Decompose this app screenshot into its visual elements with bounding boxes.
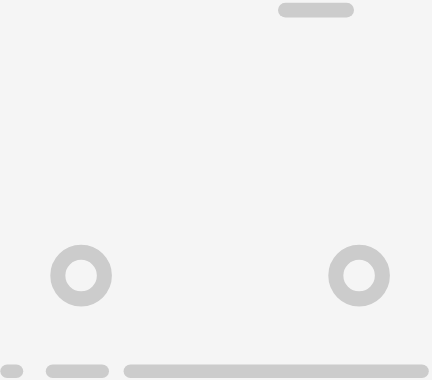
button[interactable]: Progress: [123, 364, 429, 379]
button[interactable]: Title: [278, 2, 354, 18]
button[interactable]: Menu: [0, 364, 24, 379]
button[interactable]: Next: [328, 244, 390, 307]
button[interactable]: Label: [45, 364, 109, 379]
button[interactable]: Previous: [50, 244, 112, 307]
